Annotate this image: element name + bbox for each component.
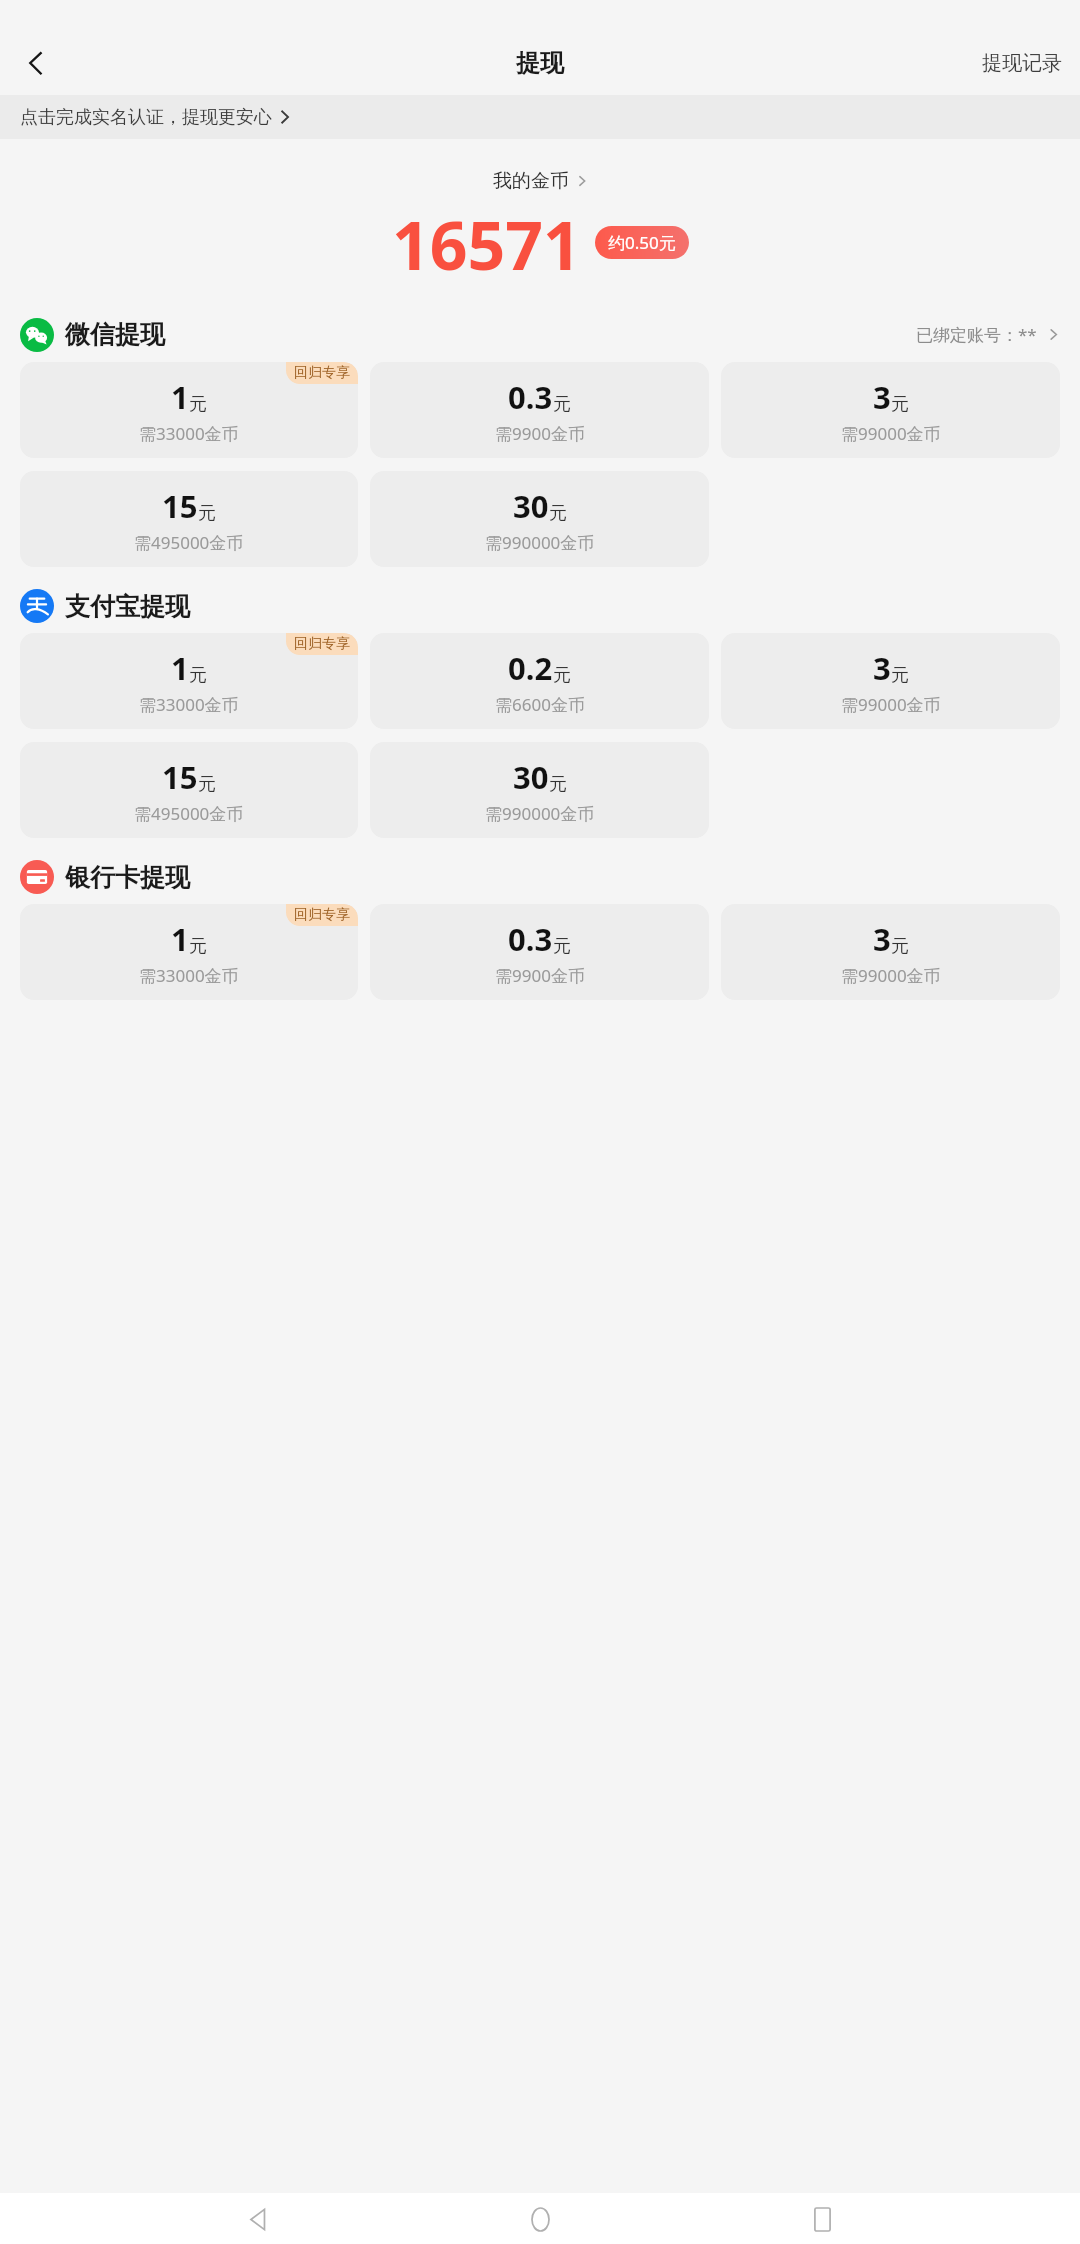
button[interactable]: 3 [721, 362, 1060, 458]
button[interactable]: 30 [370, 742, 709, 838]
staticText: 元 [891, 393, 909, 416]
staticText: 0.2 [508, 647, 553, 689]
staticText: 回归专享 [294, 906, 350, 924]
staticText: 16571 [392, 199, 581, 289]
staticText: 需99000金币 [841, 422, 941, 445]
button[interactable]: Home [516, 2195, 564, 2243]
staticText: 点击完成实名认证，提现更安心 [20, 106, 272, 129]
staticText: 需495000金币 [134, 531, 244, 554]
staticText: 提现 [516, 48, 564, 78]
staticText: 元 [553, 664, 571, 687]
button[interactable]: 0.2 [370, 633, 709, 729]
staticText: 需990000金币 [485, 531, 595, 554]
staticText: 1 [171, 918, 189, 960]
staticText: 元 [549, 502, 567, 525]
staticText: 元 [549, 773, 567, 796]
staticText: 需99000金币 [841, 964, 941, 987]
staticText: 提现记录 [982, 51, 1062, 76]
button[interactable]: Recent apps [798, 2195, 846, 2243]
staticText: 支付宝提现 [65, 591, 190, 622]
staticText: 3 [873, 918, 891, 960]
staticText: 银行卡提现 [65, 862, 190, 893]
button[interactable]: 15 [20, 742, 358, 838]
staticText: 元 [198, 773, 216, 796]
staticText: 元 [189, 393, 207, 416]
staticText: 元 [553, 935, 571, 958]
staticText: 30 [513, 485, 549, 527]
staticText: 需6600金币 [495, 693, 585, 716]
staticText: 0.3 [508, 376, 553, 418]
staticText: 回归专享 [294, 635, 350, 653]
staticText: 0.3 [508, 918, 553, 960]
button[interactable]: Back [234, 2195, 282, 2243]
button[interactable]: 3 [721, 633, 1060, 729]
staticText: 元 [189, 935, 207, 958]
staticText: 回归专享 [294, 364, 350, 382]
staticText: 元 [891, 935, 909, 958]
staticText: 需33000金币 [139, 964, 239, 987]
button[interactable]: Back [8, 35, 64, 91]
staticText: 微信提现 [65, 319, 165, 350]
staticText: 元 [891, 664, 909, 687]
staticText: 元 [553, 393, 571, 416]
button[interactable]: 回归专享 [20, 904, 358, 1000]
staticText: 15 [162, 485, 198, 527]
button[interactable]: 点击完成实名认证，提现更安心 [0, 95, 1080, 139]
staticText: 需99000金币 [841, 693, 941, 716]
button[interactable]: 15 [20, 471, 358, 567]
staticText: 15 [162, 756, 198, 798]
staticText: 1 [171, 376, 189, 418]
staticText: 30 [513, 756, 549, 798]
button[interactable]: 提现记录 [964, 41, 1080, 86]
staticText: 约0.50元 [608, 231, 676, 254]
staticText: 1 [171, 647, 189, 689]
button[interactable]: 已绑定账号：** [916, 317, 1060, 352]
button[interactable]: 3 [721, 904, 1060, 1000]
staticText: 需9900金币 [495, 964, 585, 987]
button[interactable]: 我的金币 [0, 169, 1080, 193]
button[interactable]: 30 [370, 471, 709, 567]
staticText: 元 [189, 664, 207, 687]
staticText: 需9900金币 [495, 422, 585, 445]
staticText: 已绑定账号：** [916, 323, 1037, 346]
staticText: 需33000金币 [139, 693, 239, 716]
staticText: 3 [873, 647, 891, 689]
button[interactable]: 回归专享 [20, 633, 358, 729]
button[interactable]: 0.3 [370, 362, 709, 458]
staticText: 3 [873, 376, 891, 418]
staticText: 元 [198, 502, 216, 525]
staticText: 需990000金币 [485, 802, 595, 825]
staticText: 需33000金币 [139, 422, 239, 445]
staticText: 我的金币 [493, 169, 569, 193]
button[interactable]: 0.3 [370, 904, 709, 1000]
staticText: 需495000金币 [134, 802, 244, 825]
button[interactable]: 回归专享 [20, 362, 358, 458]
